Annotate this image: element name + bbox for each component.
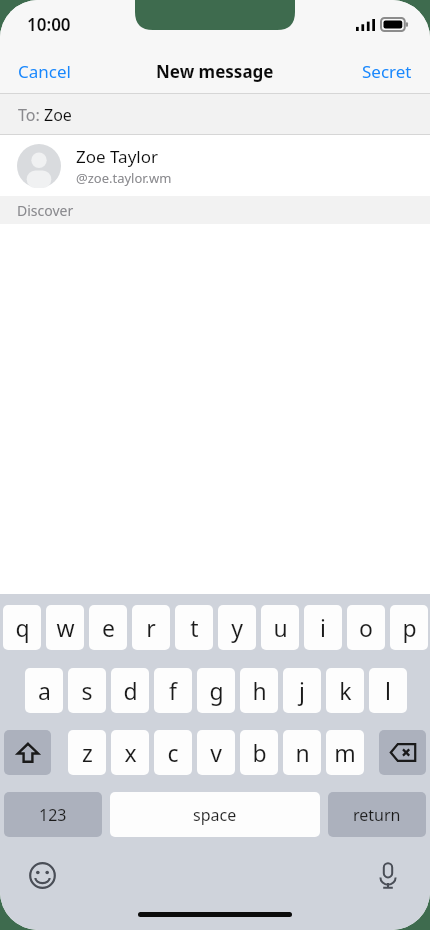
button[interactable]: s xyxy=(68,668,106,713)
button[interactable]: e xyxy=(89,605,127,650)
staticText: New message xyxy=(156,60,274,83)
staticText: j xyxy=(299,675,305,706)
staticText: b xyxy=(252,737,267,768)
button[interactable]: Backspace xyxy=(379,730,426,775)
staticText: 123 xyxy=(39,804,67,826)
button[interactable]: Emoji xyxy=(22,855,62,895)
staticText: 10:00 xyxy=(27,13,71,36)
staticText: Zoe Taylor xyxy=(76,145,159,168)
staticText: i xyxy=(320,612,326,643)
staticText: a xyxy=(38,675,51,706)
staticText: l xyxy=(385,675,391,706)
button[interactable]: m xyxy=(326,730,364,775)
staticText: u xyxy=(273,612,288,643)
button[interactable]: y xyxy=(218,605,256,650)
staticText: w xyxy=(56,612,75,643)
staticText: x xyxy=(124,737,137,768)
staticText: n xyxy=(295,737,310,768)
button[interactable]: r xyxy=(132,605,170,650)
button[interactable]: c xyxy=(154,730,192,775)
staticText: q xyxy=(15,612,30,643)
staticText: p xyxy=(402,612,417,643)
staticText: z xyxy=(82,737,93,768)
button[interactable]: Secret xyxy=(344,52,430,91)
staticText: Cancel xyxy=(18,60,71,83)
button[interactable]: n xyxy=(283,730,321,775)
staticText: Zoe xyxy=(44,104,72,126)
button[interactable]: q xyxy=(3,605,41,650)
button[interactable]: v xyxy=(197,730,235,775)
button[interactable]: d xyxy=(111,668,149,713)
button[interactable]: a xyxy=(25,668,63,713)
button[interactable]: Dictation xyxy=(368,855,408,895)
button[interactable]: l xyxy=(369,668,407,713)
staticText: r xyxy=(146,612,156,643)
button[interactable]: Shift xyxy=(4,730,51,775)
staticText: To: xyxy=(18,104,44,126)
staticText: Discover xyxy=(17,201,74,220)
button[interactable]: j xyxy=(283,668,321,713)
button[interactable]: space xyxy=(110,792,320,837)
staticText: m xyxy=(334,737,356,768)
staticText: @zoe.taylor.wm xyxy=(76,169,172,187)
staticText: c xyxy=(167,737,179,768)
button[interactable]: g xyxy=(197,668,235,713)
button[interactable]: f xyxy=(154,668,192,713)
button[interactable]: w xyxy=(46,605,84,650)
staticText: return xyxy=(353,804,401,826)
button[interactable]: z xyxy=(68,730,106,775)
button[interactable]: u xyxy=(261,605,299,650)
button[interactable]: b xyxy=(240,730,278,775)
button[interactable]: Zoe Taylor xyxy=(0,135,430,196)
button[interactable]: 123 xyxy=(4,792,102,837)
staticText: o xyxy=(359,612,373,643)
button[interactable]: x xyxy=(111,730,149,775)
button[interactable]: h xyxy=(240,668,278,713)
button[interactable]: Cancel xyxy=(0,52,89,91)
staticText: h xyxy=(252,675,267,706)
staticText: d xyxy=(123,675,138,706)
button[interactable]: k xyxy=(326,668,364,713)
staticText: v xyxy=(210,737,222,768)
staticText: k xyxy=(339,675,352,706)
staticText: y xyxy=(231,612,243,643)
staticText: Secret xyxy=(362,60,412,83)
staticText: s xyxy=(81,675,93,706)
button[interactable]: return xyxy=(328,792,426,837)
staticText: space xyxy=(193,804,237,826)
staticText: e xyxy=(102,612,115,643)
staticText: g xyxy=(209,675,224,706)
button[interactable]: t xyxy=(175,605,213,650)
staticText: f xyxy=(169,675,177,706)
staticText: t xyxy=(190,612,199,643)
button[interactable]: p xyxy=(390,605,428,650)
button[interactable]: i xyxy=(304,605,342,650)
button[interactable]: o xyxy=(347,605,385,650)
